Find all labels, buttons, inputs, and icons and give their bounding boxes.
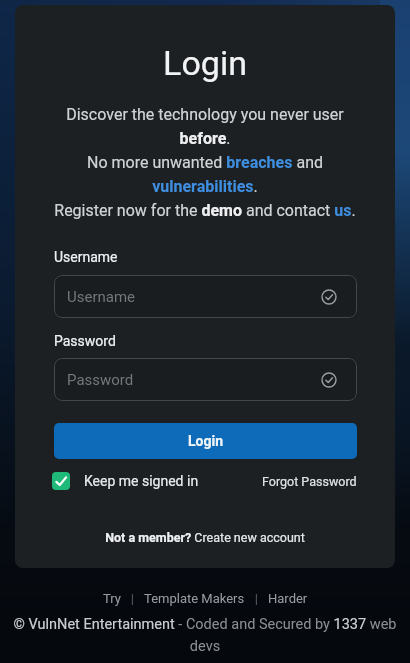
- button[interactable]: Template Makers: [144, 591, 245, 606]
- button[interactable]: Login: [54, 423, 357, 459]
- staticText: Discover the technology you never user b…: [0, 105, 410, 220]
- staticText: Login: [188, 433, 224, 449]
- staticText: Keep me signed in: [84, 473, 199, 489]
- button[interactable]: Try: [103, 591, 121, 606]
- staticText: Password: [67, 371, 134, 389]
- staticText: |: [121, 591, 144, 606]
- staticText: devs: [0, 638, 410, 655]
- button[interactable]: Forgot Password: [262, 474, 357, 489]
- staticText: © VulnNet Entertainment - Coded and Secu…: [0, 616, 410, 633]
- button[interactable]: Not a member? Create new account: [105, 530, 305, 545]
- button[interactable]: Keep me signed in: [52, 472, 199, 490]
- staticText: |: [245, 591, 268, 606]
- staticText: Username: [54, 249, 118, 265]
- button[interactable]: Harder: [268, 591, 308, 606]
- staticText: Username: [67, 288, 136, 306]
- staticText: Login: [0, 43, 410, 83]
- staticText: Password: [54, 333, 116, 349]
- button[interactable]: Username: [54, 275, 357, 318]
- button[interactable]: Password: [54, 358, 357, 401]
